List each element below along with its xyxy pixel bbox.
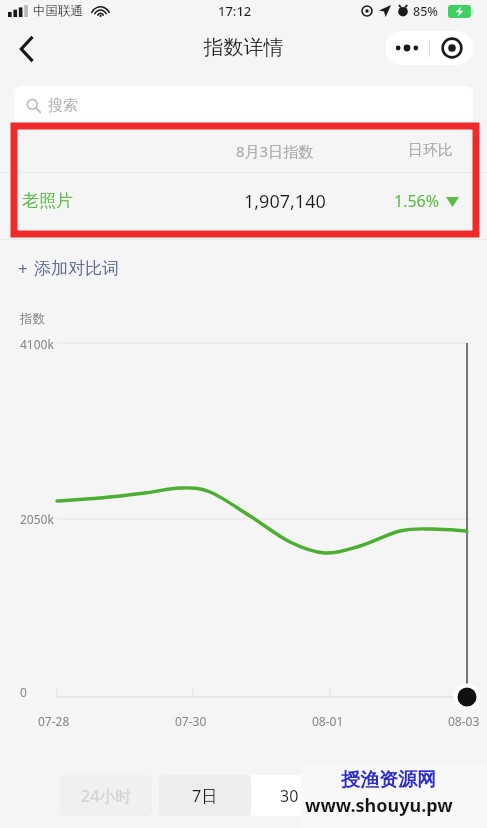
staticText: 授渔资源网 [341, 768, 436, 792]
staticText: 指数 [20, 311, 45, 327]
staticText: 4100k [20, 336, 54, 352]
button[interactable]: 30日 [251, 775, 343, 816]
button[interactable]: + [18, 252, 119, 284]
staticText: 08-03 [448, 713, 480, 729]
staticText: 老照片 [22, 190, 73, 211]
staticText: 30日 [280, 785, 315, 807]
button[interactable]: Target [430, 31, 473, 65]
button[interactable]: 24小时 [60, 775, 152, 816]
staticText: 日环比 [408, 141, 453, 160]
staticText: 85% [413, 3, 438, 20]
staticText: 7日 [192, 785, 218, 807]
staticText: 8月3日指数 [236, 141, 314, 161]
staticText: 中国联通 [33, 3, 83, 19]
button[interactable]: 7日 [159, 775, 251, 816]
staticText: 0 [20, 684, 27, 700]
staticText: 24小时 [81, 785, 132, 807]
button[interactable]: 搜索 [14, 86, 473, 124]
staticText: 08-01 [312, 713, 344, 729]
staticText: 指数详情 [0, 35, 487, 60]
staticText: 17:12 [218, 2, 252, 20]
button[interactable]: 老照片 [0, 173, 487, 231]
staticText: 1.56% [394, 190, 440, 212]
staticText: 1,907,140 [244, 189, 326, 214]
button[interactable]: More [385, 31, 429, 65]
staticText: 07-30 [175, 713, 207, 729]
staticText: + [18, 257, 28, 280]
staticText: www.shouyu.pw [305, 793, 453, 818]
button[interactable]: Back [6, 30, 46, 68]
staticText: 添加对比词 [34, 258, 119, 279]
staticText: 搜索 [48, 96, 78, 115]
staticText: 2050k [20, 511, 54, 527]
staticText: 07-28 [38, 713, 70, 729]
